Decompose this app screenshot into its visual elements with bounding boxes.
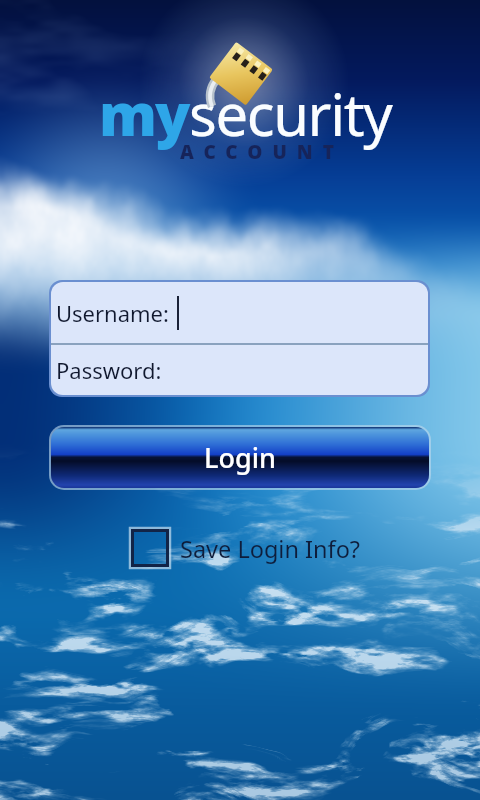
staticText: Save Login Info?	[180, 533, 361, 565]
staticText: security	[189, 74, 392, 153]
staticText: my	[99, 74, 189, 153]
staticText: Username:	[56, 298, 169, 328]
button[interactable]: Password:	[51, 345, 428, 395]
button[interactable]: Save Login Info?	[129, 527, 361, 571]
staticText: ACCOUNT	[180, 139, 344, 165]
button[interactable]: Login	[51, 427, 429, 488]
button[interactable]: Username:	[51, 282, 428, 343]
staticText: Password:	[56, 355, 162, 385]
staticText: Login	[204, 439, 276, 476]
